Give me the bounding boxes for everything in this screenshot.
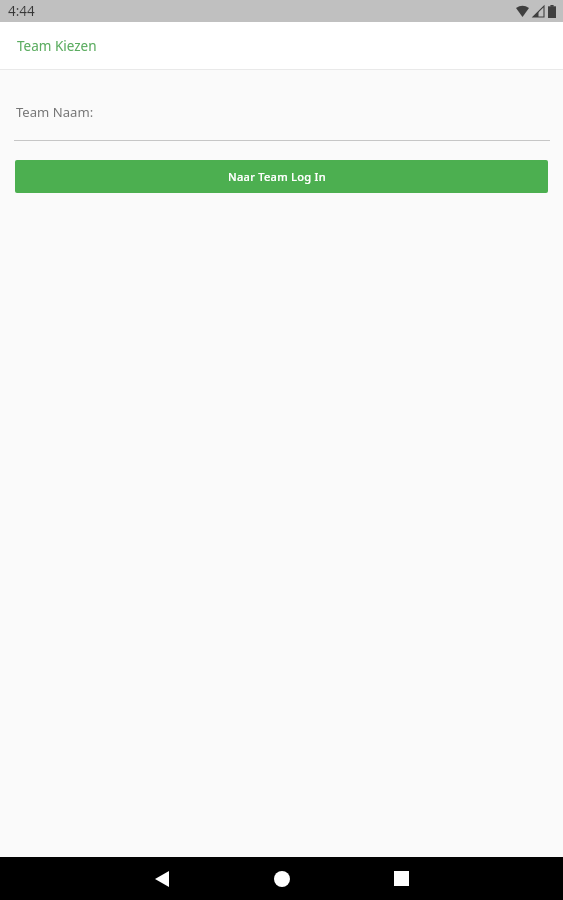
staticText: Team Naam:: [16, 103, 94, 121]
button[interactable]: Naar Team Log In: [15, 160, 548, 193]
staticText: 4:44: [8, 2, 35, 20]
button[interactable]: Home: [242, 857, 322, 900]
staticText: Naar Team Log In: [228, 169, 326, 184]
button[interactable]: Team Naam input: [0, 103, 563, 141]
staticText: Team Kiezen: [17, 37, 97, 55]
button[interactable]: Back: [122, 857, 202, 900]
button[interactable]: Recent apps: [361, 857, 441, 900]
